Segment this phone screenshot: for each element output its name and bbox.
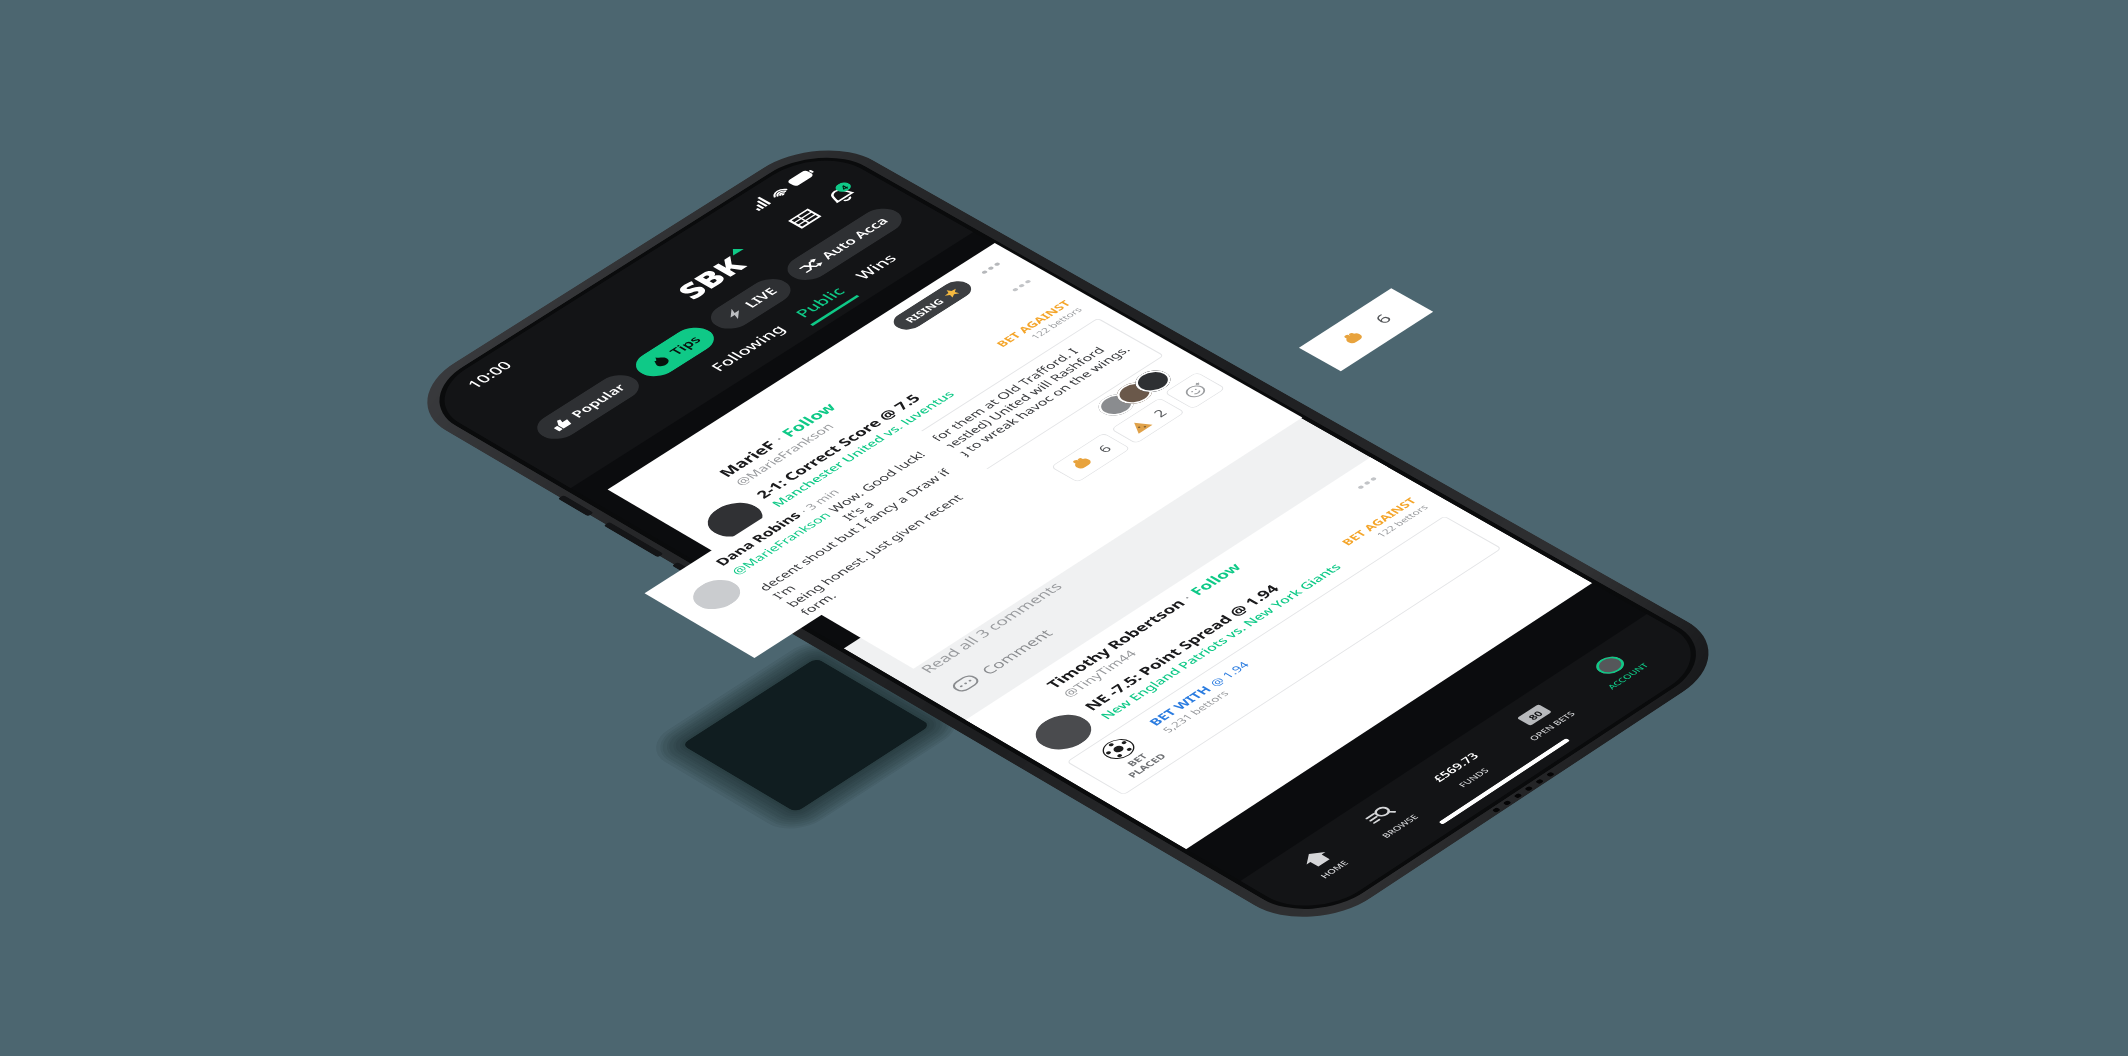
button[interactable]: Add reaction xyxy=(1164,371,1226,409)
staticText: Public xyxy=(790,283,850,320)
button[interactable]: 2 xyxy=(1110,397,1186,444)
button[interactable]: More options xyxy=(1003,275,1039,297)
staticText: Follow xyxy=(776,399,841,440)
staticText: @MarieFrankson xyxy=(727,507,838,577)
button[interactable]: Popular xyxy=(528,370,648,444)
button[interactable]: More options xyxy=(1348,472,1385,495)
staticText: BROWSE xyxy=(1378,812,1421,840)
staticText: SBK xyxy=(667,250,755,304)
button[interactable]: Following xyxy=(706,322,797,378)
staticText: @TinyTim44 xyxy=(1058,647,1140,699)
button[interactable]: 80 xyxy=(1498,693,1582,745)
staticText: 122 bettors xyxy=(1027,305,1085,341)
staticText: BET AGAINST xyxy=(992,297,1075,349)
staticText: Popular xyxy=(566,381,630,420)
staticText: · xyxy=(1173,588,1201,606)
staticText: 4 xyxy=(837,183,851,191)
staticText: 5,231 bettors xyxy=(1158,687,1233,735)
staticText: BET AGAINST xyxy=(1337,495,1420,548)
button[interactable]: Public xyxy=(788,282,859,326)
button[interactable]: ACCOUNT xyxy=(1576,645,1655,693)
staticText: BET WITH xyxy=(1144,680,1219,728)
button[interactable]: BROWSE xyxy=(1350,796,1424,842)
staticText: Wins xyxy=(850,251,901,282)
staticText: 122 bettors xyxy=(1373,502,1431,539)
staticText: · xyxy=(764,430,793,447)
staticText: · 3 min xyxy=(793,486,843,517)
button[interactable]: LIVE xyxy=(702,274,800,334)
button[interactable]: Auto Acca xyxy=(779,203,911,285)
staticText: 6 xyxy=(1093,442,1116,455)
staticText: provide a tough test for them at Old Tra… xyxy=(813,327,1150,539)
staticText: Timothy Robertson xyxy=(1041,596,1190,691)
button[interactable]: HOME xyxy=(1289,841,1355,882)
staticText: @ 1.94 xyxy=(1205,659,1253,689)
staticText: 6 min ago xyxy=(888,614,958,658)
staticText: @MarieFrankson xyxy=(730,420,838,488)
staticText: MarieF xyxy=(713,437,781,480)
staticText: ACCOUNT xyxy=(1604,661,1651,691)
staticText: LIVE xyxy=(740,284,782,310)
staticText: Following xyxy=(706,322,790,374)
staticText: Comment xyxy=(976,626,1058,677)
staticText: Dana Robins xyxy=(710,509,805,569)
staticText: Auto Acca xyxy=(816,214,893,262)
staticText: being honest. Just given recent form. xyxy=(782,473,1009,617)
staticText: 6 xyxy=(1369,310,1398,327)
staticText: HOME xyxy=(1317,858,1352,880)
staticText: 2 xyxy=(1148,406,1172,420)
staticText: RISING xyxy=(901,296,948,325)
staticText: Follow xyxy=(1185,559,1246,598)
staticText: BET PLACED xyxy=(783,533,837,566)
staticText: Read all 3 comments xyxy=(915,579,1067,676)
staticText: 2-1: Correct Score @ 7.5 xyxy=(751,391,925,501)
staticText: Manchester United vs. Juventus xyxy=(767,388,959,509)
button[interactable]: £569.73 xyxy=(1420,745,1502,796)
staticText: £569.73 xyxy=(1428,750,1482,784)
button[interactable]: Tips xyxy=(627,322,723,382)
staticText: NE -7.5: Point Spread @ 1.94 xyxy=(1079,581,1284,713)
staticText: 10:00 xyxy=(462,357,517,391)
button[interactable]: RISING xyxy=(887,277,977,333)
staticText: Wow. Good luck! It's a xyxy=(824,441,954,523)
staticText: FUNDS xyxy=(1455,766,1492,789)
staticText: BET PLACED xyxy=(1114,745,1169,780)
button[interactable]: 6 xyxy=(1050,432,1131,483)
staticText: 80 xyxy=(1525,708,1546,722)
staticText: New England Patriots vs. New York Giants xyxy=(1096,560,1345,721)
button[interactable]: Notifications xyxy=(818,181,865,210)
button[interactable]: Bet slip xyxy=(781,204,828,233)
button[interactable]: Wins xyxy=(850,251,909,287)
button[interactable]: Feed options xyxy=(972,257,1009,279)
staticText: decent shout but I fancy a Draw if I'm xyxy=(754,457,982,601)
button[interactable]: Comment xyxy=(948,625,1058,695)
staticText: Tips xyxy=(665,333,705,358)
staticText: OPEN BETS xyxy=(1526,709,1578,742)
